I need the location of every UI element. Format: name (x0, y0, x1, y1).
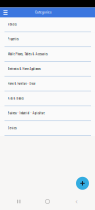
staticText: Services (7, 126, 16, 130)
staticText: Vehicles (7, 23, 16, 26)
button[interactable]: Home & Furniture - Decor (0, 77, 95, 92)
button[interactable]: Open navigation menu (0, 7, 11, 18)
button[interactable]: Home (37, 193, 57, 210)
button[interactable]: Electronics & Home Appliances (0, 62, 95, 77)
button[interactable]: Recent apps (9, 193, 29, 210)
button[interactable]: Post an ad (76, 177, 89, 190)
staticText: Kids & Babies (7, 97, 23, 100)
staticText: Categories (35, 11, 51, 14)
staticText: Electronics & Home Appliances (7, 67, 40, 71)
staticText: Properties (7, 38, 18, 41)
staticText: Home & Furniture - Decor (7, 82, 35, 85)
button[interactable]: Mobile Phones, Tablets & Accessories (0, 47, 95, 62)
button[interactable]: Business - Industrial - Agriculture (0, 106, 95, 121)
staticText: ‹ (75, 197, 77, 206)
button[interactable]: Properties (0, 32, 95, 47)
staticText: Business - Industrial - Agriculture (7, 112, 44, 115)
button[interactable]: Services (0, 121, 95, 136)
button[interactable]: Kids & Babies (0, 92, 95, 106)
staticText: Mobile Phones, Tablets & Accessories (7, 52, 47, 56)
button[interactable]: Vehicles (0, 18, 95, 32)
